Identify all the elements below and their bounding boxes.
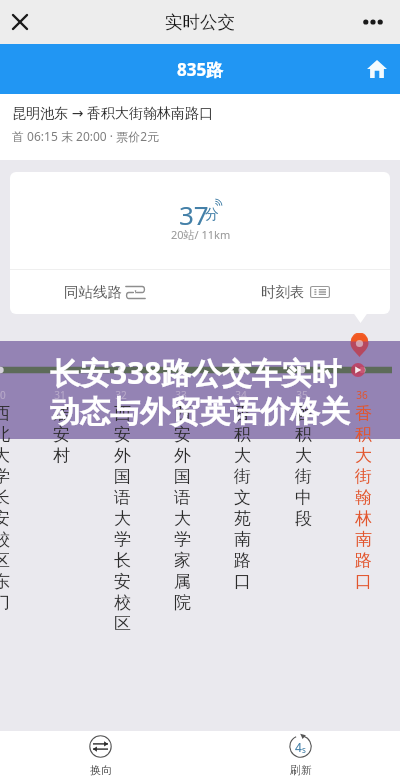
staticText: 33 — [170, 388, 192, 402]
staticText: 37 — [179, 197, 209, 232]
staticText: 属 — [174, 571, 191, 592]
staticText: 积 — [295, 424, 312, 445]
staticText: 东 — [0, 571, 10, 592]
staticText: 西 — [114, 403, 131, 424]
staticText: 南 — [234, 529, 251, 550]
staticText: 街 — [234, 466, 251, 487]
staticText: 34 — [230, 388, 252, 402]
staticText: 语 — [114, 487, 131, 508]
staticText: 北 — [0, 424, 10, 445]
staticText: 苑 — [234, 508, 251, 529]
staticText: 安 — [0, 508, 10, 529]
button[interactable]: 4 — [279, 732, 322, 780]
staticText: 安 — [174, 424, 191, 445]
staticText: 动态与外贸英语价格关 — [50, 393, 350, 431]
staticText: 实时公交 — [165, 11, 235, 33]
staticText: 口 — [355, 571, 372, 592]
staticText: 大 — [0, 445, 10, 466]
staticText: 院 — [174, 592, 191, 613]
staticText: 时刻表 — [261, 283, 305, 301]
staticText: 积 — [355, 424, 372, 445]
staticText: 国 — [114, 466, 131, 487]
staticText: 街 — [295, 466, 312, 487]
staticText: 家 — [174, 550, 191, 571]
staticText: 校 — [114, 592, 131, 613]
button[interactable]: Home — [359, 51, 395, 87]
staticText: 中 — [295, 487, 312, 508]
staticText: 大 — [114, 508, 131, 529]
staticText: 35 — [291, 388, 313, 402]
staticText: 分 — [205, 206, 219, 224]
staticText: 西 — [0, 403, 10, 424]
button[interactable]: More options — [356, 5, 390, 39]
staticText: 大 — [174, 508, 191, 529]
staticText: 学 — [114, 529, 131, 550]
staticText: 长安338路公交车实时 — [50, 352, 342, 393]
staticText: 村 — [53, 445, 70, 466]
staticText: 安 — [53, 424, 70, 445]
staticText: 安 — [114, 571, 131, 592]
staticText: 32 — [110, 388, 132, 402]
staticText: 林 — [355, 508, 372, 529]
staticText: 香 — [234, 403, 251, 424]
staticText: 30 — [0, 388, 11, 402]
staticText: 国 — [174, 466, 191, 487]
staticText: 长 — [114, 550, 131, 571]
staticText: 昆明池东 → 香积大街翰林南路口 — [12, 103, 214, 122]
staticText: 西 — [174, 403, 191, 424]
button[interactable]: 同站线路 — [10, 270, 200, 314]
staticText: 居 — [53, 403, 70, 424]
staticText: 首 06:15 末 20:00 · 票价2元 — [12, 128, 160, 144]
staticText: 大 — [234, 445, 251, 466]
staticText: 20站/ 11km — [171, 227, 231, 242]
staticText: 31 — [49, 388, 71, 402]
staticText: 学 — [174, 529, 191, 550]
staticText: 安 — [114, 424, 131, 445]
staticText: 文 — [234, 487, 251, 508]
staticText: 门 — [0, 592, 10, 613]
staticText: 香 — [295, 403, 312, 424]
staticText: 南 — [355, 529, 372, 550]
staticText: 口 — [234, 571, 251, 592]
staticText: 36 — [351, 388, 373, 402]
staticText: 外 — [114, 445, 131, 466]
staticText: 大 — [295, 445, 312, 466]
button[interactable]: 换向 — [79, 732, 122, 780]
staticText: 区 — [0, 550, 10, 571]
staticText: s — [302, 744, 306, 755]
staticText: 语 — [174, 487, 191, 508]
button[interactable]: Close — [3, 5, 37, 39]
staticText: 同站线路 — [64, 283, 122, 301]
button[interactable]: 时刻表 — [200, 270, 390, 314]
staticText: 外 — [174, 445, 191, 466]
staticText: 835路 — [177, 58, 224, 81]
staticText: 积 — [234, 424, 251, 445]
staticText: 长 — [0, 487, 10, 508]
staticText: 路 — [355, 550, 372, 571]
staticText: 4 — [295, 739, 302, 755]
staticText: 段 — [295, 508, 312, 529]
staticText: 换向 — [90, 763, 112, 777]
staticText: 香 — [355, 403, 372, 424]
staticText: 刷新 — [290, 763, 312, 777]
staticText: 校 — [0, 529, 10, 550]
staticText: 街 — [355, 466, 372, 487]
staticText: 大 — [355, 445, 372, 466]
staticText: 学 — [0, 466, 10, 487]
staticText: 区 — [114, 613, 131, 634]
staticText: 翰 — [355, 487, 372, 508]
staticText: 路 — [234, 550, 251, 571]
